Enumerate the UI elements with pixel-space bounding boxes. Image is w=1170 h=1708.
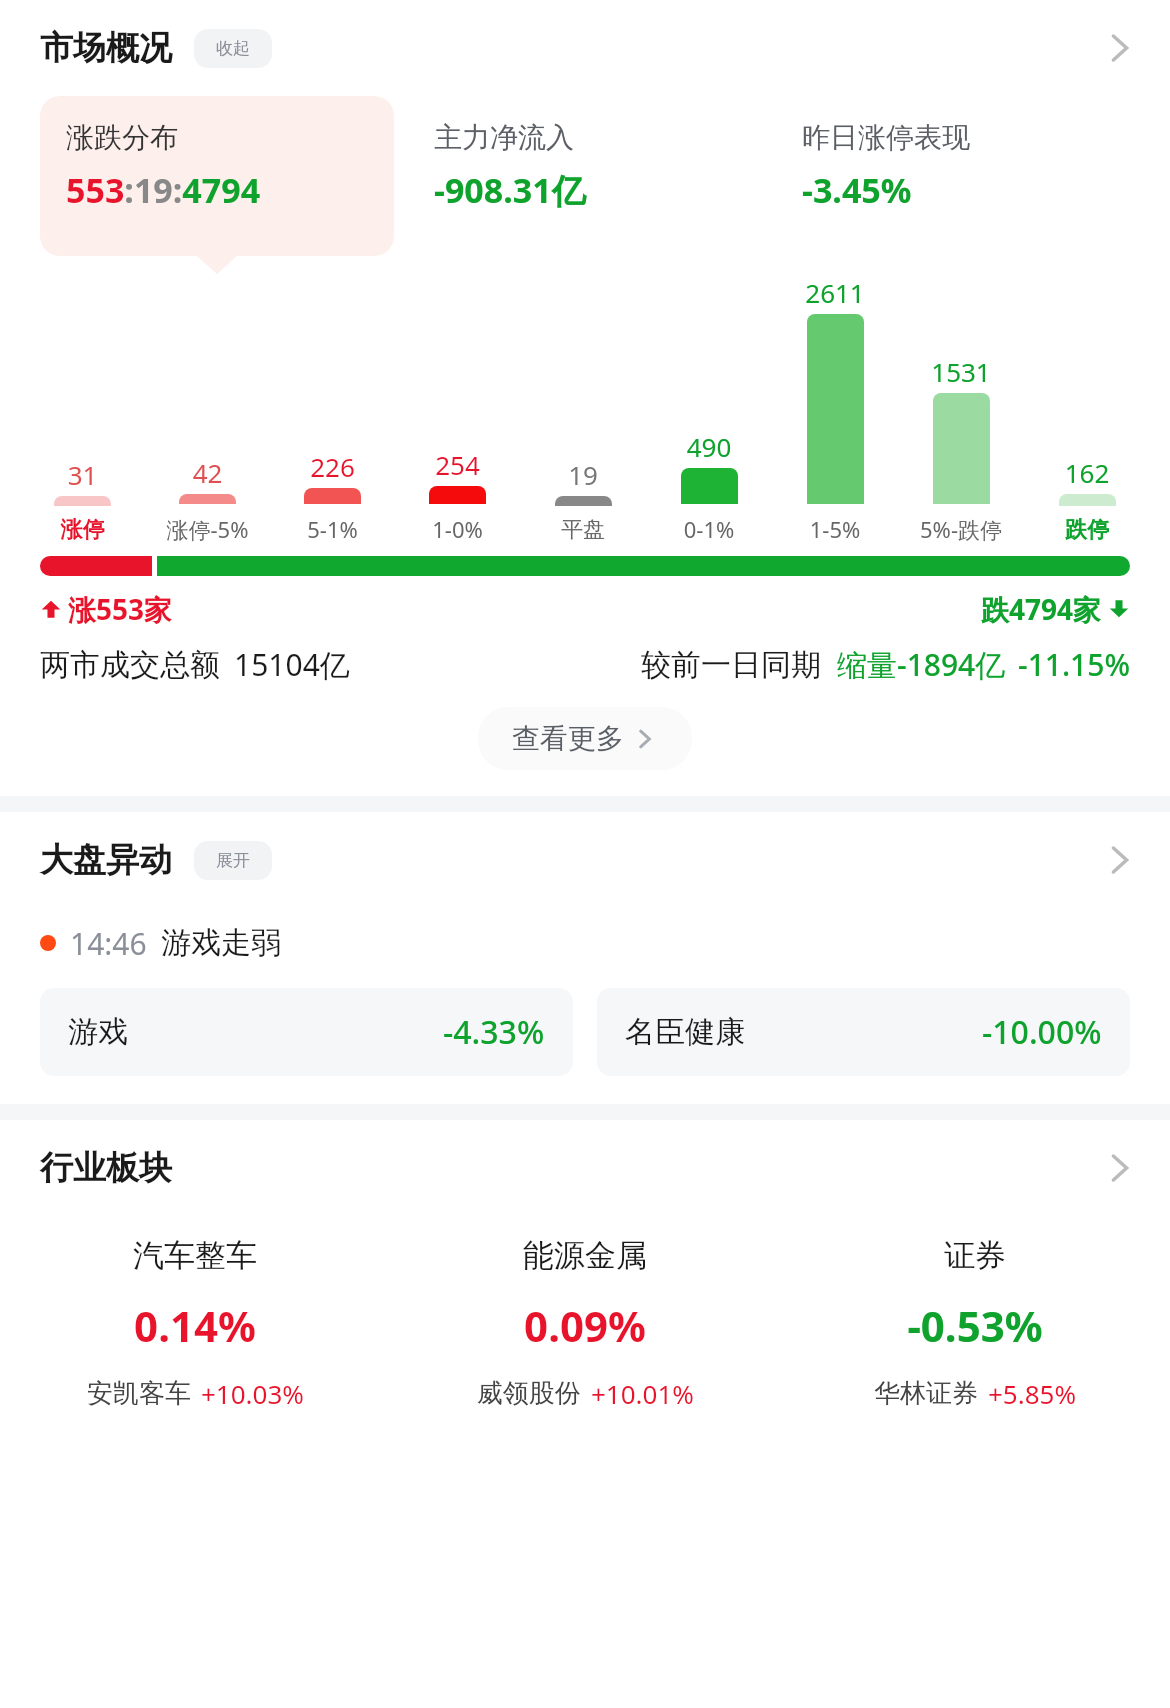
staticText: 汽车整车 [0,1236,390,1275]
staticText: 1531 [898,354,1024,389]
staticText: 0.09% [390,1297,780,1354]
button[interactable]: 市场概况 [0,0,1170,96]
button[interactable]: 查看更多 [478,707,692,770]
button[interactable]: 能源金属 [390,1230,780,1417]
button[interactable]: 名臣健康 [597,988,1130,1076]
staticText: 大盘异动 [40,839,172,881]
staticText: 553:19:4794 [66,167,261,213]
staticText: -908.31亿 [434,167,586,213]
button[interactable]: Market overview [1098,26,1142,70]
staticText: -0.53% [780,1297,1170,1354]
staticText: 490 [646,429,772,464]
staticText: +5.85% [988,1376,1077,1411]
staticText: 0-1% [646,514,772,544]
staticText: 5-1% [270,514,395,544]
staticText: 19 [520,457,646,492]
button[interactable]: 汽车整车 [0,1230,390,1417]
staticText: +10.01% [591,1376,694,1411]
staticText: 市场概况 [40,27,172,69]
staticText: 主力净流入 [434,120,574,155]
button[interactable]: 涨跌分布 [40,96,394,256]
staticText: 14:46 [70,923,147,964]
staticText: 安凯客车 [87,1377,191,1410]
staticText: 缩量-1894亿 [837,644,1006,685]
staticText: 能源金属 [390,1236,780,1275]
staticText: -11.15% [1018,644,1130,685]
button[interactable]: 主力净流入 [408,96,762,256]
button[interactable]: 证券 [780,1230,1170,1417]
staticText: 游戏 [68,1013,128,1051]
staticText: 涨停 [20,516,145,544]
staticText: 0.14% [0,1297,390,1354]
staticText: 证券 [780,1236,1170,1275]
staticText: 涨553家 [68,590,173,628]
staticText: 254 [395,447,520,482]
staticText: 1-0% [395,514,520,544]
staticText: 平盘 [520,516,646,544]
staticText: 华林证券 [874,1377,978,1410]
staticText: 游戏走弱 [161,924,281,962]
button[interactable]: 大盘异动 [0,812,1170,908]
staticText: 较前一日同期 [641,646,821,684]
staticText: 行业板块 [40,1147,172,1189]
staticText: 涨跌分布 [66,120,178,155]
staticText: 跌停 [1024,516,1150,544]
staticText: 查看更多 [512,721,624,756]
staticText: 收起 [216,38,250,59]
staticText: 15104亿 [234,644,350,685]
staticText: 1-5% [772,514,898,544]
staticText: 31 [20,457,145,492]
staticText: 5%-跌停 [898,514,1024,544]
staticText: 展开 [216,850,250,871]
staticText: 名臣健康 [625,1013,745,1051]
staticText: 跌4794家 [981,590,1102,628]
staticText: 两市成交总额 [40,646,220,684]
staticText: -4.33% [443,1010,545,1054]
button[interactable]: Market movements [1098,838,1142,882]
staticText: 162 [1024,455,1150,490]
staticText: 226 [270,449,395,484]
staticText: 42 [145,455,270,490]
staticText: +10.03% [201,1376,304,1411]
staticText: 2611 [772,275,898,310]
button[interactable]: 展开 [194,841,272,880]
button[interactable]: 昨日涨停表现 [776,96,1130,256]
staticText: -3.45% [802,167,912,213]
staticText: 昨日涨停表现 [802,120,970,155]
staticText: -10.00% [982,1010,1102,1054]
staticText: 威领股份 [477,1377,581,1410]
button[interactable]: 行业板块 [0,1120,1170,1216]
button[interactable]: Industry sectors [1098,1146,1142,1190]
button[interactable]: 收起 [194,29,272,68]
button[interactable]: 游戏 [40,988,573,1076]
staticText: 涨停-5% [145,514,270,544]
